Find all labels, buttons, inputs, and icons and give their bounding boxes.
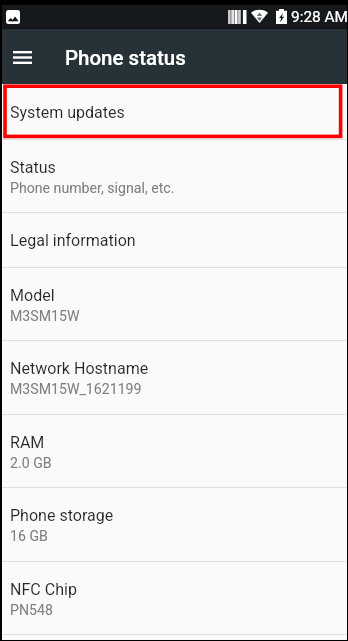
staticText: 2.0 GB (10, 455, 52, 472)
staticText: 16 GB (10, 528, 48, 545)
button[interactable]: Legal information (2, 212, 347, 267)
staticText: PN548 (10, 602, 53, 619)
staticText: Network Hostname (10, 359, 149, 378)
staticText: Phone status (65, 46, 186, 70)
staticText: Phone number, signal, etc. (10, 180, 175, 197)
staticText: M3SM15W_1621199 (10, 381, 142, 398)
button[interactable]: Network Hostname (2, 340, 347, 414)
staticText: RAM (10, 433, 45, 452)
staticText: Phone storage (10, 506, 114, 525)
staticText: System updates (10, 103, 125, 122)
staticText: M3SM15W (10, 308, 80, 325)
button[interactable]: Phone storage (2, 487, 347, 561)
button[interactable]: System updates (2, 84, 347, 139)
staticText: NFC Chip (10, 580, 77, 599)
button[interactable]: RAM (2, 414, 347, 487)
button[interactable]: Open navigation menu (5, 43, 40, 71)
button[interactable]: Status (2, 139, 347, 212)
staticText: Legal information (10, 231, 136, 250)
staticText: Model (10, 286, 55, 305)
button[interactable]: NFC Chip (2, 561, 347, 634)
staticText: 9:28 AM (291, 8, 347, 26)
button[interactable]: Model (2, 267, 347, 340)
staticText: Status (10, 158, 56, 177)
